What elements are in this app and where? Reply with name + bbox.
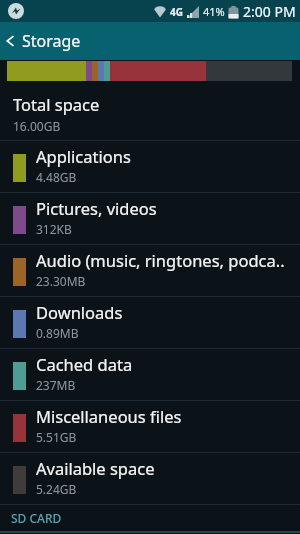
staticText: Cached data [36, 353, 133, 375]
button[interactable]: Downloads [0, 297, 300, 348]
staticText: Downloads [36, 301, 123, 323]
staticText: 23.30MB [36, 273, 86, 289]
staticText: 2:00 PM [243, 2, 296, 21]
staticText: 4G [170, 5, 183, 19]
button[interactable]: Total space [0, 81, 300, 140]
staticText: Total space [13, 93, 100, 115]
staticText: Audio (music, ringtones, podca.. [36, 249, 285, 271]
button[interactable]: Pictures, videos [0, 193, 300, 244]
button[interactable]: Applications [0, 141, 300, 192]
staticText: 4.48GB [36, 169, 77, 185]
button[interactable]: Available space [0, 453, 300, 504]
staticText: SD CARD [11, 510, 62, 526]
button[interactable]: Miscellaneous files [0, 401, 300, 452]
staticText: Storage [22, 30, 81, 52]
button[interactable]: Cached data [0, 349, 300, 400]
staticText: 312KB [36, 221, 72, 237]
staticText: Miscellaneous files [36, 405, 182, 427]
button[interactable]: Storage [0, 22, 300, 60]
staticText: Pictures, videos [36, 197, 157, 219]
staticText: Applications [36, 145, 131, 167]
staticText: 41% [203, 4, 225, 19]
staticText: 0.89MB [36, 325, 79, 341]
staticText: 5.24GB [36, 481, 77, 497]
staticText: 16.00GB [13, 118, 61, 134]
staticText: 237MB [36, 377, 76, 393]
staticText: Available space [36, 457, 155, 479]
staticText: 5.51GB [36, 429, 77, 445]
button[interactable]: Audio (music, ringtones, podca.. [0, 245, 300, 296]
